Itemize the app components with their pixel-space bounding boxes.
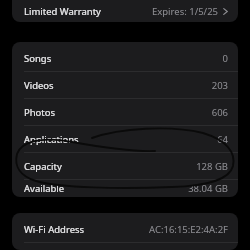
staticText: 203 [211, 79, 228, 92]
staticText: Applications [24, 133, 79, 146]
staticText: Songs [24, 52, 52, 65]
button[interactable]: Photos [12, 99, 238, 125]
staticText: 606 [211, 106, 228, 119]
staticText: Expires: 1/5/25 [151, 5, 218, 18]
button[interactable]: Applications [12, 126, 238, 152]
button[interactable]: Capacity [12, 153, 238, 179]
button[interactable]: Songs [12, 45, 238, 71]
staticText: 64 [217, 133, 228, 146]
button[interactable]: Wi-Fi Address [12, 216, 238, 242]
staticText: Capacity [24, 160, 62, 173]
button[interactable]: Available [12, 180, 238, 197]
staticText: Videos [24, 79, 54, 92]
staticText: 38.04 GB [188, 182, 228, 195]
button[interactable]: Limited Warranty [12, 0, 238, 22]
staticText: 128 GB [196, 160, 228, 173]
button[interactable]: Videos [12, 72, 238, 98]
staticText: 0 [222, 52, 228, 65]
staticText: Photos [24, 106, 56, 119]
staticText: Limited Warranty [24, 5, 101, 18]
staticText: Available [24, 182, 65, 195]
staticText: Wi-Fi Address [24, 223, 85, 236]
staticText: AC:16:15:E2:4A:2F [149, 223, 228, 236]
